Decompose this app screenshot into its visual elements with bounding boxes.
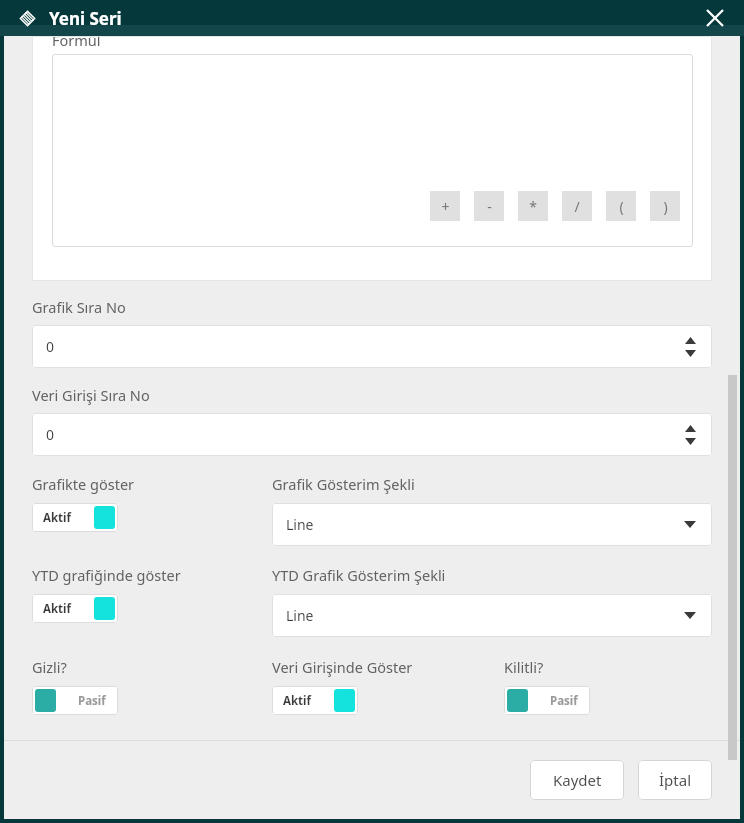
staticText: Kaydet	[553, 770, 602, 790]
staticText: Yeni Seri	[49, 7, 122, 30]
staticText: 0	[46, 425, 55, 444]
staticText: Grafik Gösterim Şekli	[272, 474, 415, 494]
button[interactable]: /	[562, 191, 592, 221]
button[interactable]: Aktif	[32, 503, 118, 532]
button[interactable]: Aktif	[32, 594, 118, 623]
button[interactable]: Pasif	[32, 686, 118, 715]
staticText: Grafik Sıra No	[32, 297, 126, 317]
staticText: Veri Girişinde Göster	[272, 657, 413, 677]
button[interactable]: 0	[32, 325, 712, 368]
button[interactable]: İptal	[638, 760, 712, 800]
staticText: *	[529, 197, 537, 216]
staticText: YTD Grafik Gösterim Şekli	[272, 565, 446, 585]
staticText: Aktif	[43, 510, 71, 526]
staticText: /	[574, 197, 580, 216]
button[interactable]: +	[52, 54, 693, 247]
staticText: YTD grafiğinde göster	[32, 565, 181, 585]
staticText: Veri Girişi Sıra No	[32, 385, 150, 405]
staticText: Grafikte göster	[32, 474, 135, 494]
staticText: Pasif	[550, 693, 578, 709]
staticText: Kilitli?	[504, 657, 544, 677]
staticText: İptal	[659, 770, 692, 790]
button[interactable]: (	[606, 191, 636, 221]
button[interactable]: )	[650, 191, 680, 221]
button[interactable]: Kapat	[700, 3, 730, 33]
button[interactable]: Line	[272, 503, 712, 546]
staticText: Formül	[52, 30, 101, 50]
button[interactable]: Pasif	[504, 686, 590, 715]
button[interactable]: Line	[272, 594, 712, 637]
staticText: )	[663, 197, 668, 216]
staticText: Pasif	[78, 693, 106, 709]
button[interactable]: Kaydet	[530, 760, 624, 800]
button[interactable]: -	[474, 191, 504, 221]
staticText: -	[487, 197, 492, 216]
staticText: +	[441, 197, 450, 216]
staticText: Gizli?	[32, 657, 67, 677]
staticText: Line	[286, 606, 314, 625]
button[interactable]: *	[518, 191, 548, 221]
staticText: Aktif	[283, 693, 311, 709]
button[interactable]: +	[430, 191, 460, 221]
button[interactable]: Aktif	[272, 686, 358, 715]
staticText: Aktif	[43, 601, 71, 617]
button[interactable]: 0	[32, 413, 712, 456]
staticText: (	[619, 197, 624, 216]
staticText: 0	[46, 337, 55, 356]
staticText: Line	[286, 515, 314, 534]
